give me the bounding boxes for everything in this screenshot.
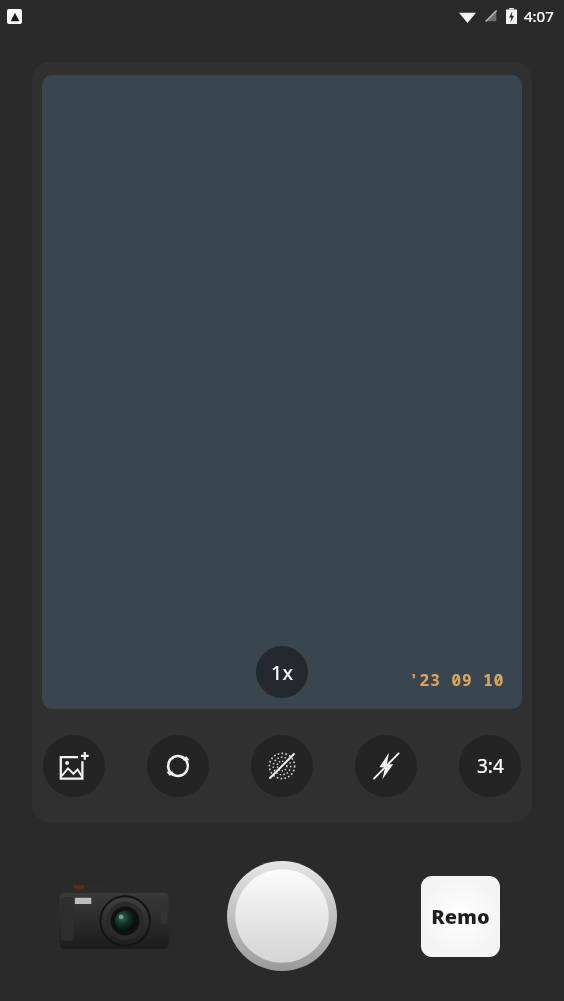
staticText: '23 09 10 [409, 669, 505, 691]
button[interactable]: Flash off [355, 735, 417, 797]
button[interactable]: 1x [42, 75, 522, 709]
button[interactable]: Add photo [43, 735, 105, 797]
staticText: 3:4 [477, 753, 504, 779]
staticText: 1x [271, 659, 294, 686]
button[interactable]: Last photo [55, 881, 172, 951]
staticText: Remo [431, 903, 490, 930]
button[interactable]: Shutter [227, 861, 337, 971]
staticText: 4:07 [524, 6, 554, 26]
button[interactable]: 1x [256, 646, 308, 698]
button[interactable]: Remo [421, 876, 500, 957]
button[interactable]: Bokeh off [251, 735, 313, 797]
button[interactable]: Switch camera [147, 735, 209, 797]
button[interactable]: 3:4 [459, 735, 521, 797]
